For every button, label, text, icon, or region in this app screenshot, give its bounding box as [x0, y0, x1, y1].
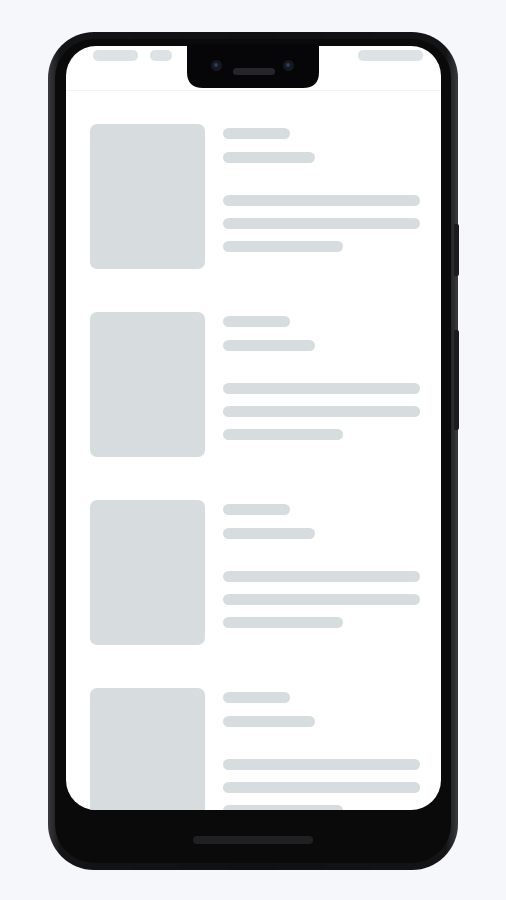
button[interactable]: Volume [454, 330, 459, 430]
button[interactable] [66, 500, 441, 688]
button[interactable]: Power [454, 224, 459, 276]
button[interactable] [66, 312, 441, 500]
button[interactable] [66, 124, 441, 312]
button[interactable] [66, 688, 441, 810]
